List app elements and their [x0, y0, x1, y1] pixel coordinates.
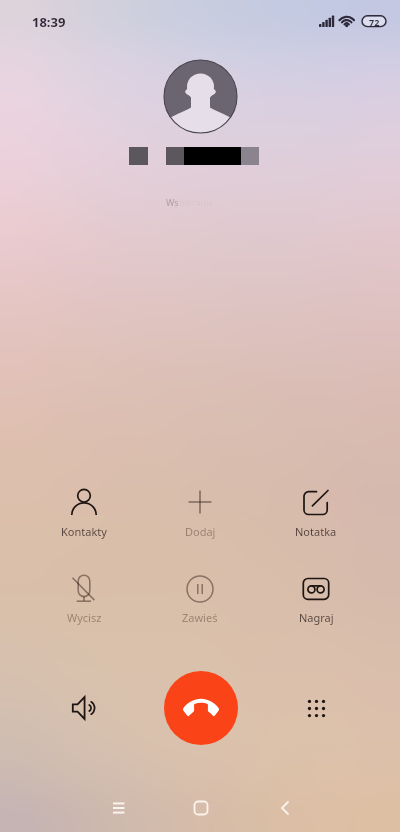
staticText: Wybieranie [166, 196, 214, 208]
staticText: 18:39 [32, 13, 66, 31]
button[interactable]: Kontakty [26, 481, 142, 539]
button[interactable]: Back [265, 789, 305, 829]
button[interactable]: Home [181, 789, 221, 829]
staticText: Notatka [295, 524, 337, 539]
staticText: Wycisz [67, 610, 102, 625]
button[interactable]: Nagraj [258, 568, 374, 626]
button[interactable]: Wycisz [26, 568, 142, 626]
button[interactable]: Dodaj [142, 481, 258, 539]
button[interactable]: Notatka [258, 481, 374, 539]
staticText: Nagraj [299, 610, 334, 625]
button[interactable]: Zawieś [142, 568, 258, 626]
button[interactable]: Recent apps [99, 789, 139, 829]
staticText: Kontakty [61, 524, 107, 539]
staticText: Dodaj [185, 524, 216, 539]
staticText: Zawieś [182, 610, 218, 625]
button[interactable]: Speaker [64, 688, 104, 728]
button[interactable]: Dialpad [296, 688, 336, 728]
staticText: Ws [166, 196, 179, 208]
staticText: 72 [369, 16, 380, 27]
button[interactable]: End call [164, 671, 238, 745]
